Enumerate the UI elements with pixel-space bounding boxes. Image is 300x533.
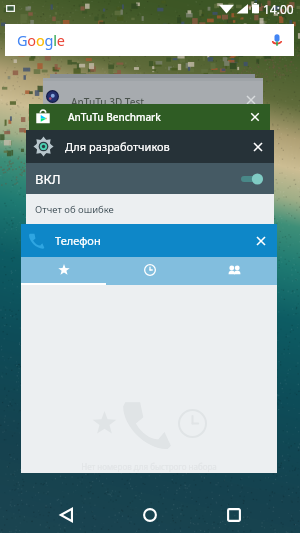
button[interactable]: AnTuTu Benchmark — [29, 104, 270, 130]
staticText: Телефон — [55, 233, 101, 248]
staticText: AnTuTu Benchmark — [68, 110, 161, 124]
staticText: Для разработчиков — [65, 139, 170, 154]
button[interactable]: Телефон — [21, 224, 277, 473]
button[interactable]: Toggle — [241, 172, 263, 186]
button[interactable]: Favourites — [21, 257, 107, 283]
button[interactable]: Recents — [107, 257, 192, 283]
button[interactable]: Close — [251, 140, 265, 154]
button[interactable]: Close — [254, 234, 268, 248]
staticText: AnTuTu 3D Test — [71, 95, 145, 109]
staticText: 14:00 — [263, 1, 294, 17]
staticText: Google — [17, 30, 65, 50]
button[interactable]: Для разработчиков — [26, 130, 274, 225]
button[interactable] — [50, 74, 255, 79]
button[interactable]: Google — [5, 24, 294, 56]
button[interactable]: Back — [24, 496, 108, 533]
button[interactable]: Contacts — [192, 257, 277, 283]
button[interactable]: Close — [248, 110, 262, 124]
button[interactable]: Home — [108, 496, 192, 533]
staticText: Нет номеров для быстрого набора — [81, 461, 217, 472]
button[interactable]: Recent apps — [192, 496, 276, 533]
staticText: Отчет об ошибке — [35, 203, 114, 216]
staticText: ВКЛ — [35, 170, 61, 188]
button[interactable]: Voice search — [268, 31, 286, 49]
button[interactable]: AnTuTu 3D Test — [43, 78, 263, 104]
